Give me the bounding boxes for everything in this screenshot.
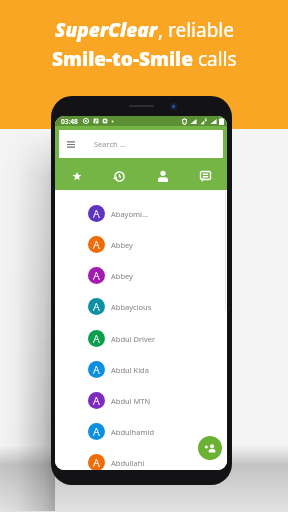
staticText: SuperClear — [55, 17, 158, 43]
button[interactable]: A — [55, 291, 227, 322]
staticText: Abdul Driver — [111, 334, 156, 344]
button[interactable]: A — [55, 323, 227, 354]
staticText: Abbey — [111, 271, 133, 281]
button[interactable]: A — [55, 447, 227, 470]
other: Menu — [67, 141, 75, 148]
button[interactable]: A — [55, 354, 227, 385]
staticText: A — [93, 206, 100, 221]
button[interactable]: Contacts — [141, 158, 184, 190]
staticText: Search ... — [94, 139, 126, 149]
button[interactable]: Favorites — [55, 158, 98, 190]
staticText: A — [93, 424, 100, 439]
staticText: Abbaycious — [111, 302, 152, 312]
button[interactable]: A — [55, 416, 227, 447]
button[interactable]: A — [55, 260, 227, 291]
button[interactable]: Add contact — [198, 436, 222, 460]
staticText: Abdul Kida — [111, 365, 149, 375]
staticText: , reliable — [158, 17, 234, 43]
button[interactable]: Recents — [98, 158, 141, 190]
staticText: Abayomi... — [111, 209, 148, 219]
staticText: A — [93, 268, 100, 283]
staticText: A — [93, 393, 100, 408]
button[interactable]: A — [55, 198, 227, 229]
staticText: Abdullahi — [111, 458, 145, 468]
staticText: Abdulhamid — [111, 427, 154, 437]
staticText: A — [93, 331, 100, 346]
staticText: Abbey — [111, 240, 133, 250]
staticText: A — [93, 299, 100, 314]
staticText: 03:48 — [61, 117, 78, 126]
staticText: A — [93, 362, 100, 377]
staticText: A — [93, 455, 100, 470]
staticText: Smile-to-Smile — [52, 46, 193, 72]
staticText: Abdul MTN — [111, 396, 151, 406]
button[interactable]: A — [55, 385, 227, 416]
staticText: calls — [193, 46, 237, 72]
staticText: A — [93, 237, 100, 252]
button[interactable]: A — [55, 229, 227, 260]
button[interactable]: Messages — [184, 158, 227, 190]
button[interactable]: Menu — [59, 130, 223, 158]
